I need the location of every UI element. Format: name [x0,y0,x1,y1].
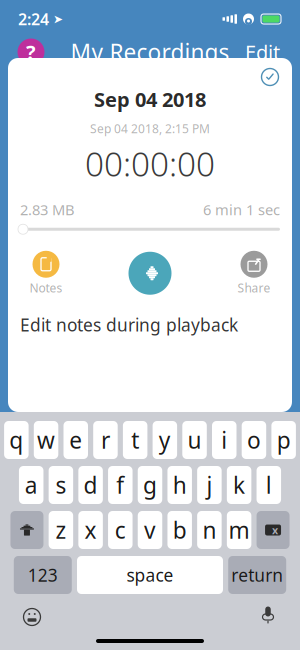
staticText: y [159,425,171,455]
button[interactable]: c [108,511,132,549]
button[interactable]: g [138,466,162,504]
staticText: 00:00:00 [85,141,215,186]
staticText: Edit notes during playback [20,313,238,336]
staticText: 2:24 [18,8,49,30]
button[interactable]: l [256,466,281,504]
button[interactable]: 123 [14,556,72,594]
staticText: r [101,425,110,455]
staticText: space [126,563,173,586]
staticText: return [231,563,283,586]
staticText: My Recordings [70,37,229,67]
staticText: o [247,425,261,455]
staticText: s [55,470,66,500]
button[interactable]: i [212,421,236,459]
button[interactable]: Help [14,35,48,69]
staticText: t [131,425,139,455]
staticText: p [277,425,291,455]
staticText: i [221,425,227,455]
staticText: 6 min 1 sec [203,200,280,219]
button[interactable]: Edit [239,33,286,71]
button[interactable]: b [167,511,192,549]
staticText: n [202,515,216,545]
staticText: 2.83 MB [20,200,75,219]
button[interactable]: Share [230,251,278,296]
button[interactable]: y [153,421,177,459]
button[interactable]: Done [257,64,283,90]
staticText: q [9,425,23,455]
button[interactable]: p [271,421,296,459]
button[interactable]: w [34,421,58,459]
staticText: Notes [29,280,62,296]
button[interactable]: q [4,421,29,459]
button[interactable]: x [78,511,103,549]
button[interactable]: r [93,421,118,459]
staticText: w [37,425,55,455]
staticText: c [115,515,126,545]
staticText: h [173,470,187,500]
button[interactable]: o [242,421,266,459]
button[interactable]: f [108,466,132,504]
staticText: Sep 04 2018, 2:15 PM [90,121,210,136]
staticText: m [229,515,250,545]
button[interactable]: space [77,556,223,594]
button[interactable]: e [63,421,88,459]
button[interactable]: a [19,466,43,504]
staticText: g [143,470,157,500]
button[interactable]: h [167,466,192,504]
staticText: ? [26,39,36,65]
staticText: Sep 04 2018 [94,86,206,113]
button[interactable]: n [197,511,222,549]
staticText: z [55,515,66,545]
button[interactable]: Notes [22,251,70,296]
button[interactable]: j [197,466,222,504]
staticText: x [272,523,278,537]
button[interactable]: t [123,421,147,459]
staticText: u [187,425,201,455]
staticText: Share [237,280,270,296]
staticText: x [85,515,97,545]
button[interactable]: Shift [10,511,43,549]
button[interactable]: Dictate [248,600,288,634]
staticText: f [116,470,124,500]
button[interactable]: v [138,511,162,549]
button[interactable]: return [228,556,286,594]
staticText: e [69,425,82,455]
staticText: ➤ [49,12,63,26]
staticText: v [144,515,156,545]
staticText: d [84,470,98,500]
staticText: a [25,470,38,500]
button[interactable]: Emoji [12,600,52,634]
staticText: k [233,470,245,500]
staticText: b [173,515,187,545]
button[interactable]: Play [124,247,176,299]
button[interactable]: m [227,511,251,549]
staticText: j [206,470,212,500]
staticText: 123 [28,563,58,586]
button[interactable]: Delete [256,511,289,549]
button[interactable]: d [78,466,103,504]
staticText: Edit [245,39,280,65]
button[interactable]: s [49,466,73,504]
staticText: l [266,470,272,500]
button[interactable]: z [49,511,73,549]
button[interactable]: k [227,466,251,504]
button[interactable]: u [182,421,207,459]
